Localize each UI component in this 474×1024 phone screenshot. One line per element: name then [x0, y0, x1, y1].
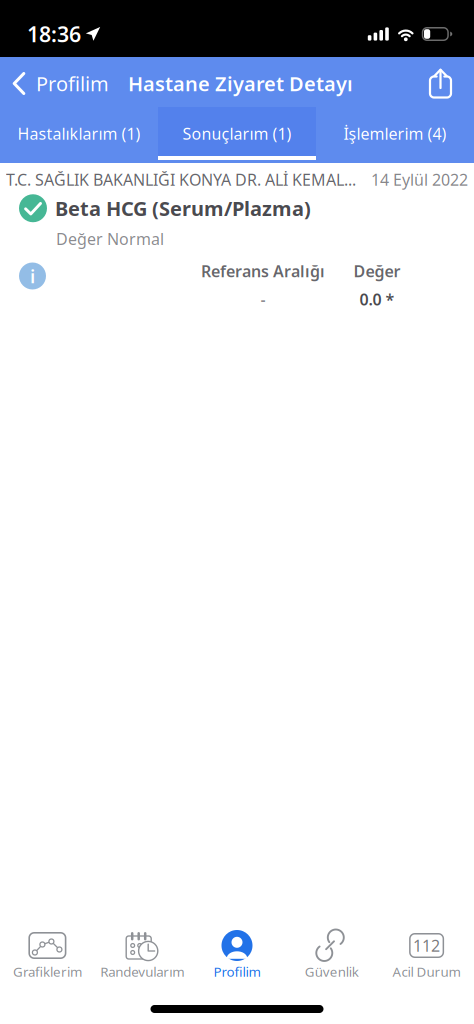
staticText: Profilim: [213, 963, 260, 980]
staticText: Acil Durum: [393, 963, 461, 980]
staticText: İşlemlerim (4): [343, 123, 446, 144]
staticText: 14 Eylül 2022: [371, 169, 468, 190]
staticText: Profilim: [36, 70, 109, 97]
button[interactable]: Sonuçlarım (1): [158, 107, 316, 160]
button[interactable]: Profilim: [0, 60, 120, 107]
staticText: 18:36: [27, 20, 81, 48]
staticText: Referans Aralığı: [201, 260, 325, 282]
button[interactable]: Randevularım: [95, 928, 190, 990]
staticText: Grafiklerim: [13, 963, 82, 980]
staticText: Değer: [353, 260, 400, 282]
staticText: -: [260, 289, 265, 310]
staticText: Hastane Ziyaret Detayı: [128, 70, 353, 97]
button[interactable]: Güvenlik: [284, 928, 379, 990]
staticText: Sonuçlarım (1): [182, 123, 291, 144]
button[interactable]: Share: [415, 60, 474, 107]
staticText: Hastalıklarım (1): [17, 123, 140, 144]
button[interactable]: Profilim: [190, 928, 284, 990]
staticText: Beta HCG (Serum/Plazma): [55, 195, 311, 222]
staticText: Güvenlik: [305, 963, 359, 980]
staticText: T.C. SAĞLIK BAKANLIĞI KONYA DR. ALİ KEMA…: [6, 169, 356, 190]
button[interactable]: Grafiklerim: [0, 928, 95, 990]
button[interactable]: Hastalıklarım (1): [0, 107, 158, 160]
button[interactable]: 112: [379, 928, 474, 990]
button[interactable]: İşlemlerim (4): [316, 107, 474, 160]
staticText: 112: [413, 935, 440, 956]
staticText: i: [30, 264, 35, 288]
staticText: Randevularım: [100, 963, 184, 980]
staticText: Değer Normal: [56, 228, 164, 249]
staticText: 0.0 *: [359, 289, 394, 310]
